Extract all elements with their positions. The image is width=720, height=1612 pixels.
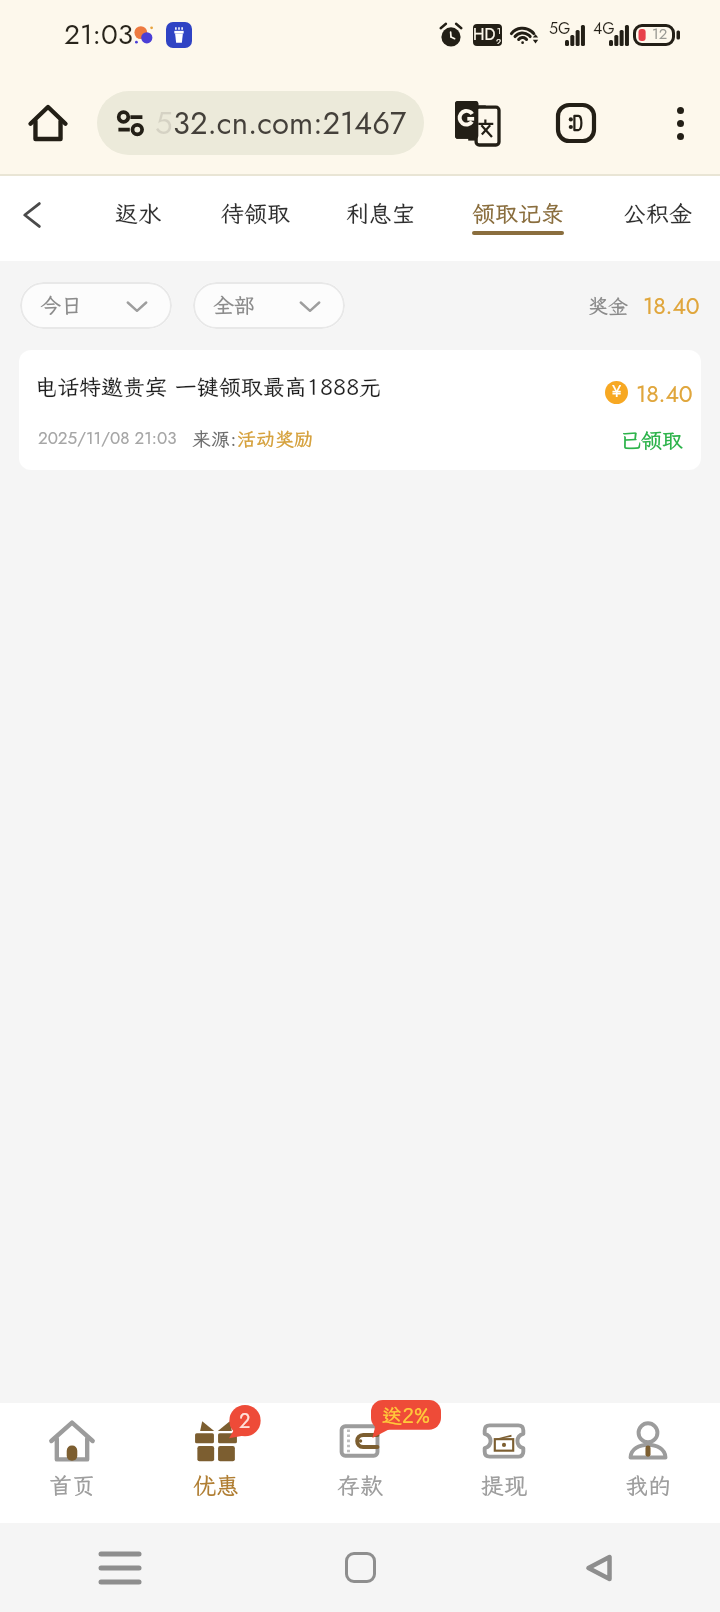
staticText: 利息宝 [346,198,415,228]
staticText: 已领取 [620,426,683,454]
button[interactable]: Home [240,1523,480,1612]
staticText: 返水 [115,198,161,228]
staticText: ¥ [612,381,622,403]
button[interactable]: 今日 [20,282,172,329]
button[interactable]: 提现 [432,1403,576,1523]
staticText: 存款 [337,1470,383,1500]
button[interactable]: 领取记录 [458,176,578,261]
button[interactable]: 2 [144,1403,288,1523]
staticText: 我的 [625,1470,671,1500]
staticText: 2025/11/08 21:03 [38,426,177,451]
button[interactable]: Recent apps [0,1523,240,1612]
staticText: 待领取 [221,198,290,228]
staticText: 1 [497,24,502,37]
staticText: 4G [593,17,615,40]
staticText: 12 [652,23,668,45]
staticText: 电话特邀贵宾 一键领取最高1888元 [35,372,382,401]
button[interactable]: 返水 [78,176,198,261]
button[interactable]: Translate page [444,90,510,156]
staticText: 公积金 [623,198,692,228]
button[interactable]: 5 [97,91,424,155]
staticText: 领取记录 [472,198,564,228]
staticText: 优惠 [193,1470,239,1500]
staticText: 送2% [382,1402,430,1428]
button[interactable]: 我的 [576,1403,720,1523]
staticText: 奖金 [588,292,628,318]
button[interactable]: 电话特邀贵宾 一键领取最高1888元 [19,350,701,470]
staticText: HD [473,24,496,45]
staticText: 18.40 [643,289,700,322]
staticText: 5G [549,17,571,40]
staticText: 活动奖励 [237,426,314,451]
staticText: 2 [239,1407,251,1436]
button[interactable]: 公积金 [597,176,717,261]
staticText: 首页 [49,1470,95,1500]
staticText: 今日 [40,291,82,319]
button[interactable]: 待领取 [195,176,315,261]
button[interactable]: Back [1,185,61,245]
staticText: 5 [155,101,173,146]
button[interactable]: Home page [14,89,82,157]
staticText: 全部 [213,291,255,319]
staticText: 来源: [192,426,237,451]
button[interactable]: 全部 [193,282,345,329]
button[interactable]: Back [480,1523,720,1612]
staticText: 提现 [481,1470,527,1500]
staticText: 32.cn.com:21467 [173,101,407,146]
button[interactable]: 送2% [288,1403,432,1523]
button[interactable]: More options [647,90,713,156]
button[interactable]: 利息宝 [320,176,440,261]
staticText: 2 [496,35,502,44]
button[interactable]: 首页 [0,1403,144,1523]
staticText: 18.40 [636,377,693,410]
staticText: 21:03 [64,14,134,54]
button[interactable]: Switch tabs [543,90,609,156]
